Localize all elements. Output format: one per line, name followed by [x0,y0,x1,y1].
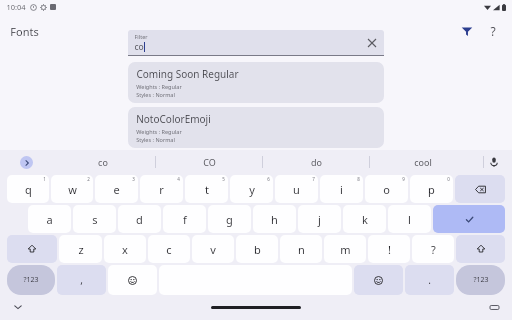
staticText: 8 [357,176,360,182]
button[interactable]: CO [156,150,262,174]
button[interactable]: p [410,175,453,203]
staticText: m [340,242,351,257]
staticText: Styles : Normal [136,91,175,98]
staticText: f [183,212,187,227]
staticText: 3 [132,176,135,182]
staticText: g [226,212,233,227]
staticText: s [92,212,98,227]
button[interactable]: do [263,150,369,174]
staticText: 10:04 [6,2,26,12]
button[interactable]: e [95,175,138,203]
staticText: 9 [402,176,405,182]
button[interactable]: t [185,175,228,203]
button[interactable]: Filter [454,18,480,44]
staticText: ? [431,242,436,257]
staticText: q [25,182,32,197]
button[interactable]: NotoColorEmoji [128,107,384,148]
staticText: ? [490,23,496,39]
staticText: NotoColorEmoji [136,112,211,126]
button[interactable]: Filter [128,30,384,56]
button[interactable]: Symbols [7,265,55,295]
button[interactable]: Clear [364,35,380,51]
button[interactable]: Switch keyboard [486,299,502,315]
button[interactable]: cool [370,150,476,174]
staticText: 2 [87,176,90,182]
button[interactable]: Shift [456,235,505,263]
button[interactable]: Hide keyboard [10,299,26,315]
button[interactable]: Shift [7,235,57,263]
button[interactable]: Coming Soon Regular [128,62,384,103]
staticText: i [340,182,343,197]
staticText: ?123 [473,275,489,285]
staticText: y [249,182,255,197]
staticText: 4 [177,176,180,182]
button[interactable]: v [192,235,234,263]
button[interactable]: m [324,235,366,263]
staticText: t [205,182,209,197]
button[interactable]: d [118,205,161,233]
button[interactable]: g [208,205,251,233]
button[interactable]: a [28,205,71,233]
button[interactable]: ? [412,235,454,263]
staticText: d [136,212,143,227]
button[interactable]: Help [480,18,506,44]
button[interactable]: Symbols [456,265,505,295]
button[interactable]: b [236,235,278,263]
staticText: Fonts [10,24,39,39]
button[interactable]: y [230,175,273,203]
button[interactable]: w [51,175,93,203]
button[interactable]: k [343,205,386,233]
button[interactable]: More suggestions [20,156,33,169]
button[interactable]: f [163,205,206,233]
staticText: 7 [312,176,315,182]
staticText: Filter [134,33,148,40]
staticText: . [428,273,431,287]
button[interactable]: NotoColorEmojiFlags [128,152,384,185]
staticText: CO [203,156,216,168]
button[interactable]: c [148,235,190,263]
staticText: p [428,182,435,197]
staticText: l [408,212,411,227]
button[interactable]: x [104,235,146,263]
button[interactable]: Comma [57,265,106,295]
staticText: Styles : Normal [136,136,175,143]
button[interactable]: Enter [433,205,505,233]
staticText: Coming Soon Regular [136,67,239,81]
button[interactable]: s [73,205,116,233]
staticText: ?123 [23,275,39,285]
button[interactable]: z [59,235,102,263]
staticText: do [311,156,322,168]
button[interactable]: n [280,235,322,263]
staticText: r [159,182,164,197]
staticText: 0 [447,176,450,182]
button[interactable]: u [275,175,318,203]
staticText: n [298,242,305,257]
button[interactable]: ! [368,235,410,263]
staticText: 1 [43,176,46,182]
button[interactable]: h [253,205,296,233]
staticText: b [254,242,261,257]
button[interactable]: Emoji [354,265,403,295]
staticText: v [210,242,216,257]
staticText: , [80,273,83,287]
staticText: Weights : Regular [136,173,182,180]
staticText: e [113,182,120,197]
button[interactable]: r [140,175,183,203]
button[interactable]: i [320,175,363,203]
button[interactable]: Backspace [455,175,505,203]
staticText: j [318,212,321,227]
button[interactable]: l [388,205,431,233]
button[interactable]: o [365,175,408,203]
button[interactable]: Period [405,265,454,295]
button[interactable]: Emoji [108,265,157,295]
staticText: 5 [222,176,225,182]
staticText: k [362,212,368,227]
button[interactable]: Voice input [484,152,504,172]
button[interactable]: j [298,205,341,233]
button[interactable]: co [50,150,155,174]
staticText: a [46,212,53,227]
staticText: Weights : Regular [136,83,182,90]
staticText: w [68,182,77,197]
button[interactable]: q [7,175,49,203]
